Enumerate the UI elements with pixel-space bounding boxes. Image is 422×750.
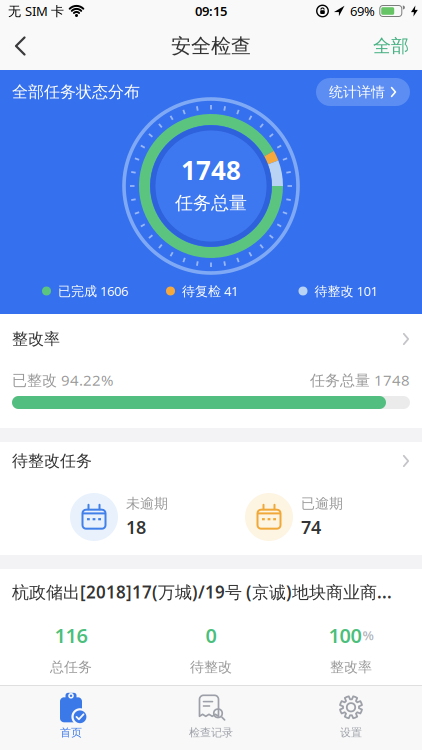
staticText: 全部 xyxy=(373,35,409,57)
staticText: 18 xyxy=(126,515,146,539)
staticText: 待整改任务 xyxy=(12,451,92,471)
staticText: % xyxy=(362,627,373,644)
button[interactable]: 检查记录 xyxy=(141,686,281,739)
staticText: 总任务 xyxy=(50,659,92,676)
button[interactable]: 统计详情 xyxy=(316,78,410,106)
staticText: 设置 xyxy=(340,726,362,739)
staticText: 无 SIM 卡 xyxy=(8,2,64,20)
button[interactable]: 设置 xyxy=(281,686,421,739)
staticText: 待整改 xyxy=(190,659,232,676)
button[interactable]: 首页 xyxy=(1,686,141,739)
button[interactable] xyxy=(0,35,27,56)
staticText: 74 xyxy=(301,515,321,539)
staticText: 69% xyxy=(350,2,375,20)
staticText: 待整改 101 xyxy=(314,282,377,300)
button[interactable]: 整改率 xyxy=(0,314,422,428)
staticText: 已逾期 xyxy=(301,495,343,512)
staticText: 检查记录 xyxy=(189,726,233,739)
staticText: 116 xyxy=(54,622,87,649)
staticText: 1748 xyxy=(181,153,241,187)
staticText: 杭政储出[2018]17(万城)/19号 (京诚)地块商业商... xyxy=(12,581,392,603)
staticText: 已整改 94.22% xyxy=(12,370,113,390)
staticText: 未逾期 xyxy=(126,495,168,512)
staticText: 整改率 xyxy=(330,659,372,676)
button[interactable]: 待整改任务 xyxy=(0,442,422,555)
staticText: 100 xyxy=(328,622,361,649)
staticText: 首页 xyxy=(60,726,82,739)
staticText: 安全检查 xyxy=(171,34,251,58)
button[interactable]: 全部 xyxy=(373,35,422,57)
staticText: 整改率 xyxy=(12,329,60,349)
staticText: 统计详情 xyxy=(329,83,385,101)
staticText: 任务总量 1748 xyxy=(310,370,410,390)
button[interactable]: 杭政储出[2018]17(万城)/19号 (京诚)地块商业商... xyxy=(0,569,422,685)
staticText: 全部任务状态分布 xyxy=(12,82,140,102)
staticText: 已完成 1606 xyxy=(58,282,128,300)
staticText: 待复检 41 xyxy=(182,282,238,300)
staticText: 09:15 xyxy=(195,2,227,20)
staticText: 任务总量 xyxy=(175,192,247,214)
staticText: 0 xyxy=(205,622,216,649)
